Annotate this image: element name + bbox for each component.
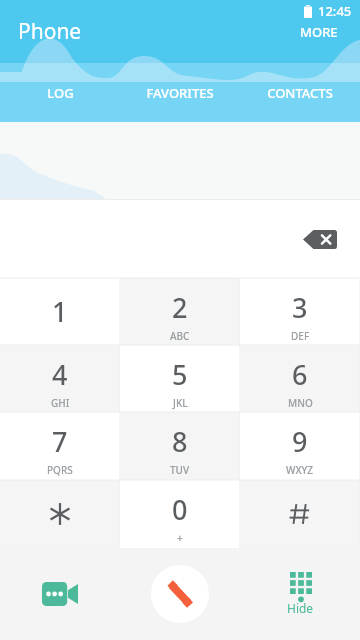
button[interactable]: 4 — [0, 345, 120, 412]
staticText: DEF — [291, 329, 310, 343]
button[interactable] — [0, 480, 120, 548]
button[interactable]: 0 — [120, 480, 240, 548]
button[interactable] — [240, 480, 360, 548]
button[interactable]: 6 — [240, 345, 360, 412]
staticText: 0 — [172, 491, 188, 528]
button[interactable]: 8 — [120, 412, 240, 480]
staticText: 4 — [52, 356, 68, 393]
staticText: PQRS — [47, 463, 73, 477]
staticText: 9 — [292, 423, 308, 460]
button[interactable]: Hide — [240, 548, 360, 640]
button[interactable]: 1 — [0, 278, 120, 345]
button[interactable]: Backspace — [298, 222, 342, 256]
button[interactable]: LOG — [0, 63, 120, 122]
staticText: 6 — [292, 356, 308, 393]
staticText: JKL — [173, 396, 188, 410]
staticText: 3 — [292, 289, 308, 326]
staticText: CONTACTS — [267, 84, 333, 102]
staticText: ABC — [170, 329, 190, 343]
staticText: 1 — [52, 293, 68, 330]
staticText: 5 — [172, 356, 188, 393]
button[interactable]: MORE — [296, 19, 342, 45]
button[interactable]: 7 — [0, 412, 120, 480]
staticText: 7 — [52, 423, 68, 460]
staticText: 8 — [172, 423, 188, 460]
button[interactable]: CONTACTS — [240, 63, 360, 122]
button[interactable]: 3 — [240, 278, 360, 345]
staticText: Hide — [287, 600, 314, 616]
staticText: LOG — [47, 84, 74, 102]
button[interactable]: 9 — [240, 412, 360, 480]
button[interactable]: Video call — [0, 548, 120, 640]
button[interactable]: FAVORITES — [120, 63, 240, 122]
button[interactable]: Phone — [18, 17, 82, 46]
staticText: FAVORITES — [146, 84, 214, 102]
button[interactable]: Call — [120, 548, 240, 640]
staticText: WXYZ — [286, 463, 314, 477]
staticText: 2 — [172, 289, 188, 326]
staticText: MNO — [288, 396, 313, 410]
button[interactable]: 5 — [120, 345, 240, 412]
staticText: TUV — [170, 463, 190, 477]
button[interactable]: 2 — [120, 278, 240, 345]
staticText: 12:45 — [318, 2, 352, 20]
staticText: + — [177, 531, 183, 545]
staticText: MORE — [300, 23, 338, 41]
staticText: GHI — [51, 396, 70, 410]
